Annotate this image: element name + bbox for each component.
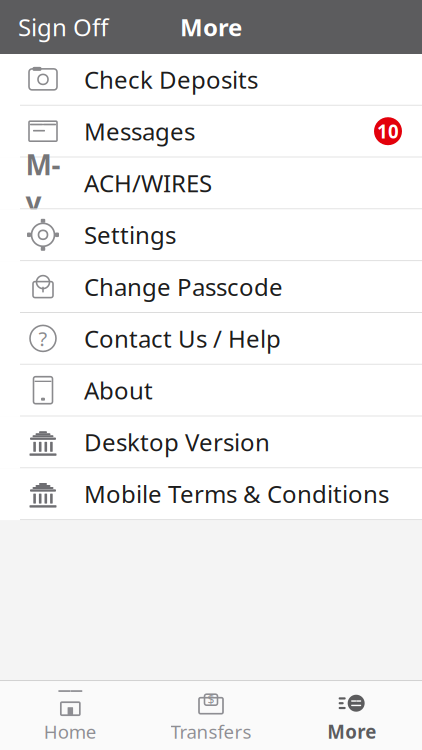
staticText: Sign Off bbox=[18, 11, 109, 43]
button[interactable]: $ bbox=[141, 681, 281, 750]
staticText: Transfers bbox=[170, 719, 251, 744]
staticText: Contact Us / Help bbox=[84, 322, 281, 354]
button[interactable]: Messages bbox=[0, 106, 422, 158]
button[interactable]: Change Passcode bbox=[0, 261, 422, 313]
button[interactable]: Settings bbox=[0, 209, 422, 261]
staticText: More bbox=[180, 11, 242, 43]
staticText: ? bbox=[38, 325, 47, 352]
button[interactable]: Sign Off bbox=[0, 0, 127, 54]
button[interactable]: My bbox=[0, 158, 422, 209]
staticText: Messages bbox=[84, 115, 195, 147]
staticText: More bbox=[327, 719, 376, 744]
button[interactable]: About bbox=[0, 365, 422, 417]
staticText: Settings bbox=[84, 219, 176, 251]
button[interactable]: Mobile Terms & Conditions bbox=[0, 468, 422, 520]
button[interactable]: ? bbox=[0, 313, 422, 365]
staticText: 10 bbox=[377, 119, 399, 144]
button[interactable]: Check Deposits bbox=[0, 54, 422, 106]
staticText: Home bbox=[44, 719, 97, 744]
staticText: ACH/WIRES bbox=[84, 167, 212, 199]
staticText: Mobile Terms & Conditions bbox=[84, 478, 389, 510]
staticText: Desktop Version bbox=[84, 426, 270, 458]
staticText: About bbox=[84, 374, 153, 406]
button[interactable]: Desktop Version bbox=[0, 417, 422, 468]
button[interactable]: Home bbox=[0, 681, 141, 750]
staticText: Check Deposits bbox=[84, 63, 258, 95]
staticText: $ bbox=[207, 692, 214, 708]
button[interactable]: More bbox=[281, 681, 422, 750]
staticText: My bbox=[25, 146, 60, 220]
staticText: Change Passcode bbox=[84, 271, 283, 303]
